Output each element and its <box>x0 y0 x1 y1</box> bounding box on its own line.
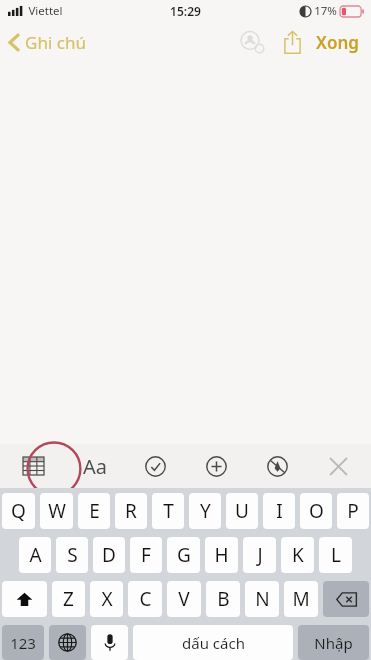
staticText: T <box>163 498 174 524</box>
staticText: D <box>102 542 116 568</box>
button[interactable]: J <box>243 537 276 573</box>
staticText: F <box>141 542 151 568</box>
staticText: K <box>292 542 304 568</box>
staticText: G <box>177 542 191 568</box>
button[interactable]: A <box>19 537 51 573</box>
button[interactable]: S <box>56 537 88 573</box>
staticText: M <box>292 586 310 612</box>
staticText: Viettel <box>28 3 63 19</box>
staticText: U <box>235 498 249 524</box>
staticText: N <box>255 586 270 612</box>
button[interactable]: P <box>337 493 369 529</box>
staticText: dấu cách <box>182 633 245 653</box>
staticText: P <box>347 498 359 524</box>
staticText: Xong <box>316 31 359 54</box>
button[interactable]: M <box>284 581 318 617</box>
staticText: 123 <box>10 633 36 653</box>
button[interactable]: Close <box>308 444 369 488</box>
button[interactable]: H <box>205 537 238 573</box>
button[interactable]: E <box>78 493 110 529</box>
button[interactable]: Backspace <box>323 581 369 617</box>
staticText: E <box>89 498 100 524</box>
button[interactable]: Y <box>189 493 221 529</box>
button[interactable]: X <box>90 581 123 617</box>
staticText: Ghi chú <box>25 31 86 54</box>
button[interactable]: 123 <box>2 625 44 660</box>
staticText: Nhập <box>314 633 353 653</box>
button[interactable]: Table <box>2 444 64 488</box>
button[interactable]: Voice input <box>91 625 128 660</box>
button[interactable]: Share <box>272 22 312 62</box>
staticText: Z <box>63 586 74 612</box>
staticText: 17% <box>314 3 337 19</box>
button[interactable]: Nhập <box>298 625 369 660</box>
staticText: X <box>101 586 113 612</box>
staticText: A <box>29 542 42 568</box>
staticText: I <box>276 498 283 524</box>
button[interactable]: I <box>263 493 295 529</box>
button[interactable]: dấu cách <box>133 625 293 660</box>
staticText: O <box>309 498 324 524</box>
button[interactable]: T <box>152 493 184 529</box>
staticText: V <box>178 586 190 612</box>
button[interactable]: K <box>281 537 314 573</box>
staticText: C <box>139 586 152 612</box>
staticText: R <box>125 498 137 524</box>
button[interactable]: Checklist <box>125 444 186 488</box>
button[interactable]: Q <box>2 493 35 529</box>
button[interactable]: Add people <box>232 22 272 62</box>
button[interactable]: Z <box>52 581 85 617</box>
button[interactable]: Markup <box>247 444 308 488</box>
button[interactable]: Text format <box>64 444 125 488</box>
staticText: S <box>67 542 78 568</box>
button[interactable]: W <box>40 493 73 529</box>
button[interactable]: D <box>93 537 125 573</box>
button[interactable]: Add attachment <box>186 444 247 488</box>
button[interactable]: V <box>167 581 201 617</box>
staticText: J <box>257 542 263 568</box>
staticText: Y <box>200 498 211 524</box>
staticText: 15:29 <box>170 3 201 19</box>
staticText: Aa <box>83 453 107 480</box>
button[interactable]: L <box>319 537 352 573</box>
staticText: L <box>331 542 341 568</box>
button[interactable]: N <box>245 581 279 617</box>
button[interactable]: Ghi chú <box>0 27 96 58</box>
button[interactable]: G <box>167 537 200 573</box>
button[interactable]: B <box>206 581 240 617</box>
button[interactable]: Change keyboard language <box>49 625 86 660</box>
button[interactable]: C <box>128 581 162 617</box>
staticText: H <box>214 542 229 568</box>
button[interactable]: F <box>130 537 162 573</box>
button[interactable]: Shift <box>2 581 47 617</box>
staticText: Q <box>11 498 26 524</box>
button[interactable]: O <box>300 493 332 529</box>
button[interactable]: R <box>115 493 147 529</box>
button[interactable]: Xong <box>312 31 361 54</box>
button[interactable]: U <box>226 493 258 529</box>
staticText: B <box>217 586 230 612</box>
staticText: W <box>48 498 66 524</box>
